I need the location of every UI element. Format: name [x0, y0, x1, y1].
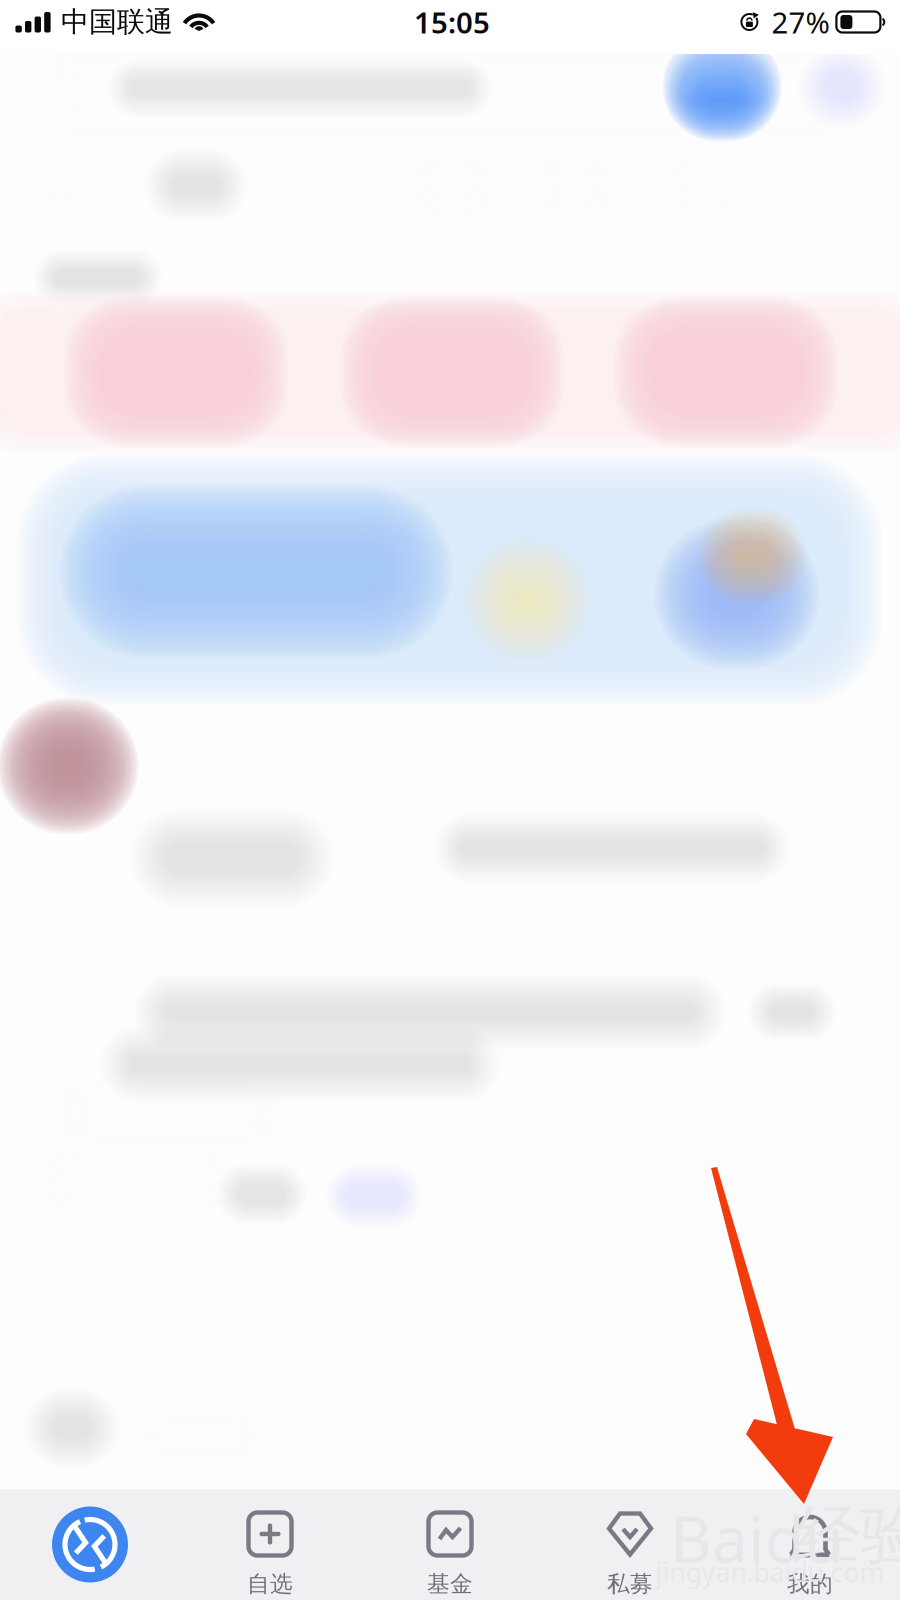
- staticText: 27%: [771, 2, 829, 41]
- button[interactable]: 私募: [540, 1489, 720, 1600]
- button[interactable]: 基金: [360, 1489, 540, 1600]
- staticText: 中国联通: [61, 5, 173, 39]
- button[interactable]: 我的: [720, 1489, 900, 1600]
- staticText: 私募: [607, 1570, 653, 1598]
- button[interactable]: 首页: [0, 1489, 180, 1600]
- staticText: 基金: [427, 1570, 473, 1598]
- button[interactable]: 自选: [180, 1489, 360, 1600]
- staticText: Baidu: [670, 1495, 844, 1580]
- staticText: 我的: [787, 1570, 833, 1598]
- staticText: 自选: [247, 1570, 293, 1598]
- staticText: 经验: [796, 1497, 900, 1575]
- staticText: jingyan.baidu.com: [655, 1554, 884, 1590]
- staticText: 15:05: [414, 2, 490, 41]
